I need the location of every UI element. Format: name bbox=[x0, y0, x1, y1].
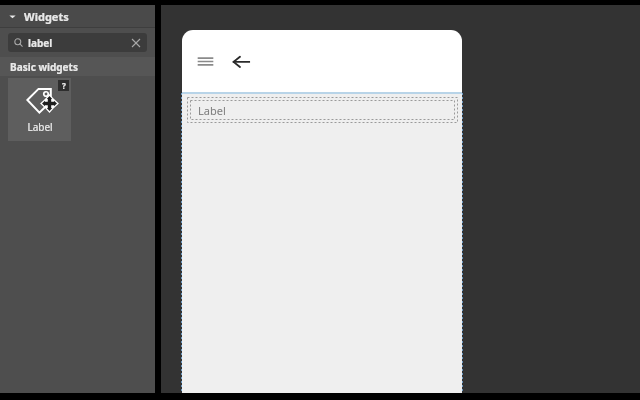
staticText: Basic widgets bbox=[10, 60, 78, 74]
staticText: Widgets bbox=[24, 9, 69, 24]
button[interactable]: Label bbox=[187, 97, 458, 123]
button[interactable]: Basic widgets bbox=[0, 57, 155, 76]
button[interactable]: label bbox=[8, 33, 147, 52]
button[interactable]: Widgets bbox=[0, 5, 155, 27]
button[interactable]: Menu bbox=[191, 47, 219, 75]
staticText: Label bbox=[198, 103, 226, 118]
staticText: Label bbox=[27, 120, 53, 134]
button[interactable]: Help bbox=[58, 80, 69, 91]
button[interactable]: Back bbox=[227, 47, 255, 75]
staticText: ? bbox=[62, 80, 66, 91]
button[interactable]: Clear search bbox=[129, 36, 143, 50]
staticText: label bbox=[28, 36, 53, 50]
button[interactable]: Help bbox=[8, 78, 71, 141]
